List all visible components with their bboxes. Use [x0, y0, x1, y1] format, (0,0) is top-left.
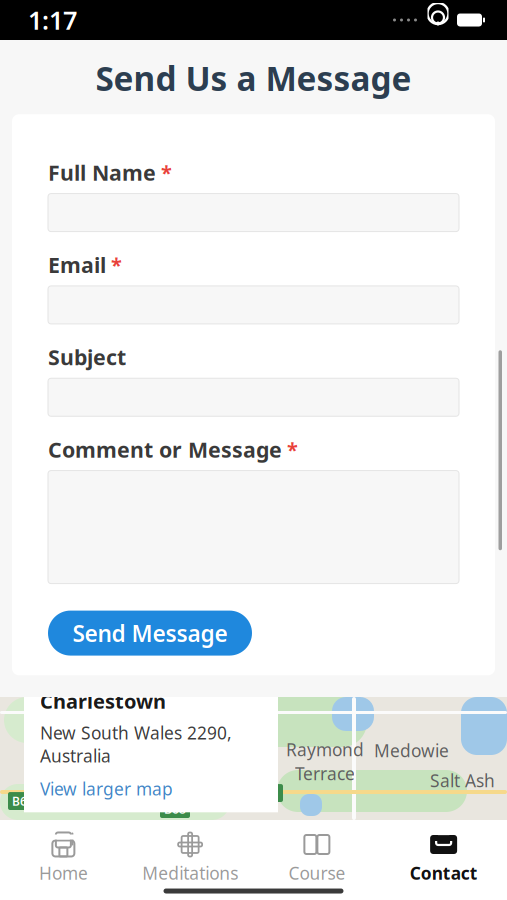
button[interactable]: View larger map	[40, 777, 264, 800]
staticText: Full Name	[48, 158, 156, 187]
staticText: Terrace	[295, 762, 355, 785]
staticText: B68	[164, 801, 186, 817]
button[interactable]: Meditations	[127, 827, 254, 888]
staticText: *	[161, 159, 172, 186]
staticText: Kurri Kurri	[44, 791, 129, 814]
staticText: *	[111, 251, 122, 278]
staticText: Charlestown	[40, 688, 166, 714]
staticText: Send Us a Message	[95, 56, 411, 100]
staticText: Salt Ash	[430, 769, 495, 792]
staticText: Medowie	[374, 739, 449, 762]
button[interactable]: Send Message	[48, 611, 252, 656]
staticText: Send Message	[72, 618, 227, 648]
button[interactable]: Contact	[380, 827, 507, 888]
staticText: View larger map	[40, 777, 173, 800]
staticText: Course	[288, 861, 345, 884]
staticText: Comment or Message	[48, 435, 282, 464]
staticText: Meditations	[142, 861, 238, 884]
staticText: Email	[48, 251, 106, 279]
staticText: Subject	[48, 343, 126, 371]
button[interactable]: Home	[0, 827, 127, 888]
staticText: Contact	[410, 861, 478, 884]
staticText: B68	[12, 793, 34, 809]
staticText: 1:17	[28, 3, 77, 37]
staticText: *	[287, 436, 298, 463]
staticText: New South Wales 2290, Australia	[40, 721, 232, 767]
staticText: Home	[39, 861, 88, 884]
staticText: A1	[264, 785, 279, 801]
button[interactable]: Course	[253, 827, 380, 888]
staticText: Raymond	[286, 738, 364, 761]
